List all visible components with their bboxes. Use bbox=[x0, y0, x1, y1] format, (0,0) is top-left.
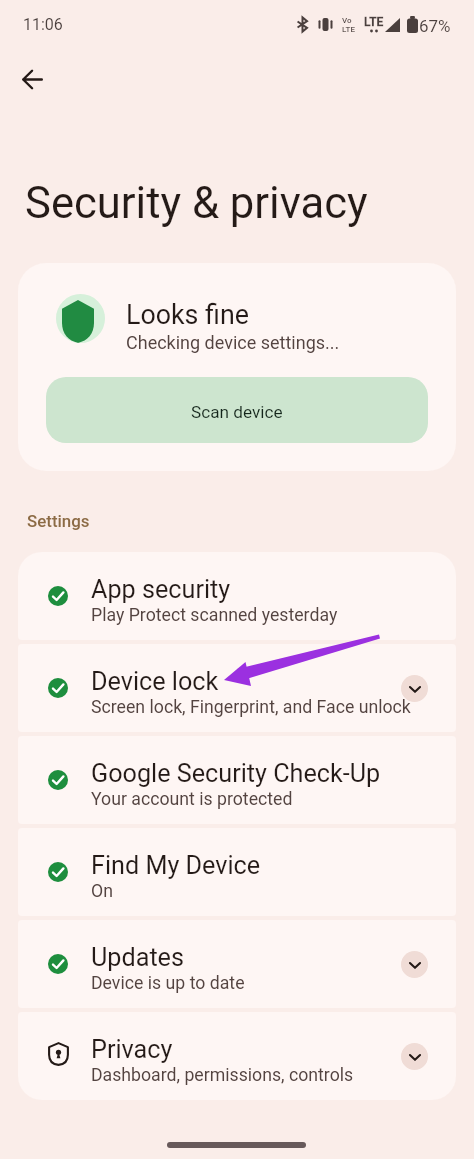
staticText: 67% bbox=[419, 16, 451, 36]
staticText: Checking device settings... bbox=[126, 332, 340, 353]
staticText: App security bbox=[91, 575, 231, 605]
staticText: Dashboard, permissions, controls bbox=[91, 1065, 354, 1086]
staticText: LTE bbox=[364, 15, 384, 29]
staticText: Screen lock, Fingerprint, and Face unloc… bbox=[91, 697, 411, 718]
staticText: Updates bbox=[91, 943, 184, 973]
staticText: LTE bbox=[342, 25, 355, 34]
button[interactable]: Privacy bbox=[18, 1012, 456, 1100]
staticText: Your account is protected bbox=[91, 789, 293, 810]
staticText: 11:06 bbox=[23, 15, 63, 34]
button[interactable]: Back bbox=[9, 56, 56, 103]
button[interactable]: Scan device bbox=[46, 377, 428, 443]
staticText: Privacy bbox=[91, 1035, 173, 1065]
staticText: On bbox=[91, 881, 113, 902]
staticText: Device is up to date bbox=[91, 973, 245, 994]
button[interactable]: Find My Device bbox=[18, 828, 456, 916]
button[interactable]: Expand bbox=[401, 675, 428, 702]
button[interactable]: Updates bbox=[18, 920, 456, 1008]
staticText: Settings bbox=[27, 511, 90, 531]
staticText: Google Security Check-Up bbox=[91, 759, 381, 789]
button[interactable]: Device lock bbox=[18, 644, 456, 732]
button[interactable]: Expand bbox=[401, 1043, 428, 1070]
staticText: Vo bbox=[342, 16, 352, 25]
staticText: Find My Device bbox=[91, 851, 261, 881]
staticText: Scan device bbox=[191, 402, 283, 422]
staticText: Security & privacy bbox=[25, 178, 368, 229]
staticText: Device lock bbox=[91, 667, 219, 697]
button[interactable]: Google Security Check-Up bbox=[18, 736, 456, 824]
staticText: Looks fine bbox=[126, 299, 249, 330]
button[interactable]: App security bbox=[18, 552, 456, 640]
staticText: Play Protect scanned yesterday bbox=[91, 605, 338, 626]
button[interactable]: Expand bbox=[401, 951, 428, 978]
button[interactable]: Looks fine bbox=[18, 263, 456, 471]
